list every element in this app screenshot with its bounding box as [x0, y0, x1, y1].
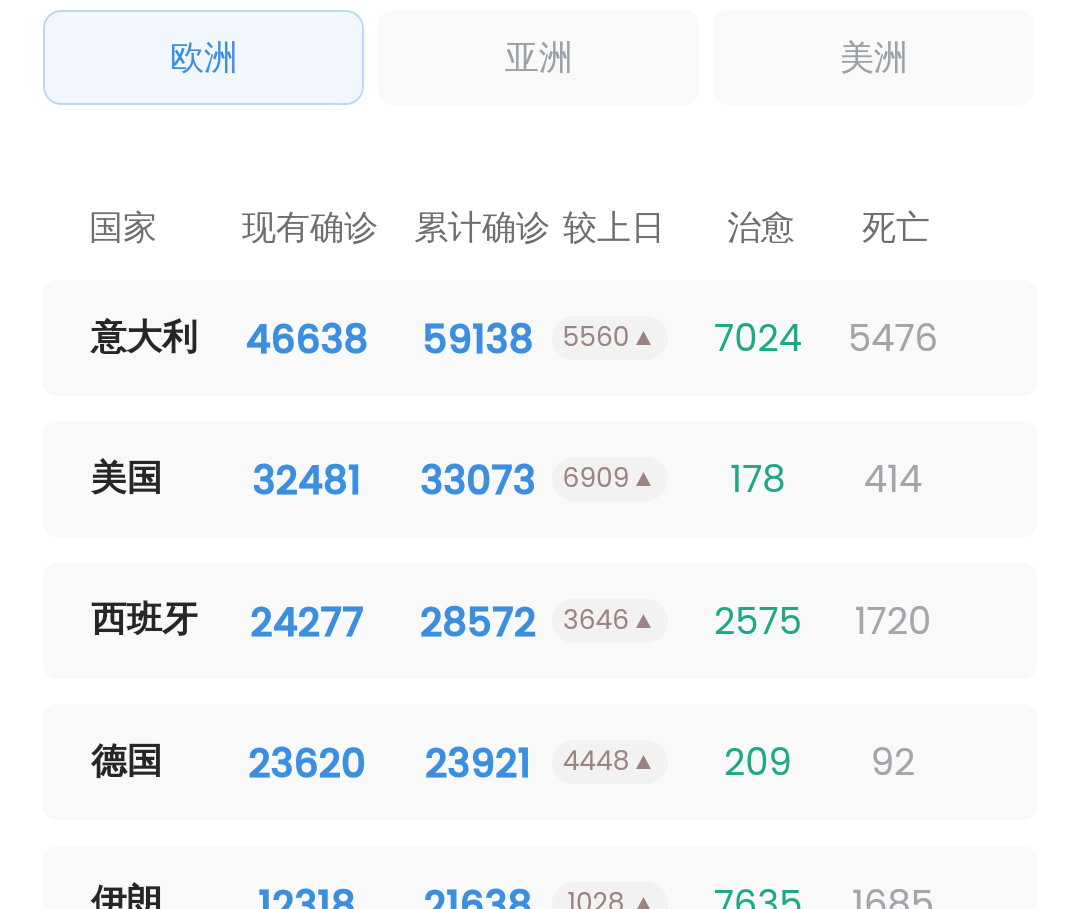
- staticText: 24277: [147, 595, 467, 649]
- other: increase: [636, 755, 651, 769]
- staticText: 5560: [551, 318, 641, 355]
- staticText: 较上日: [454, 206, 774, 249]
- staticText: 414: [733, 453, 1053, 505]
- staticText: 1685: [733, 878, 1053, 909]
- staticText: 亚洲: [505, 36, 573, 79]
- staticText: 46638: [147, 312, 467, 366]
- other: increase: [636, 472, 651, 486]
- staticText: 累计确诊: [322, 206, 642, 249]
- staticText: 国家: [89, 206, 157, 249]
- other: increase: [636, 614, 651, 628]
- other: increase: [636, 897, 651, 909]
- staticText: 3646: [551, 601, 641, 638]
- staticText: 1028: [551, 884, 641, 909]
- staticText: 2575: [598, 595, 918, 647]
- staticText: 6909: [551, 459, 641, 496]
- staticText: 欧洲: [170, 36, 238, 79]
- staticText: 28572: [318, 595, 638, 649]
- staticText: 1720: [733, 595, 1053, 647]
- staticText: 23921: [318, 736, 638, 790]
- staticText: 美洲: [840, 36, 908, 79]
- staticText: 伊朗: [91, 880, 162, 909]
- staticText: 33073: [318, 453, 638, 507]
- button[interactable]: [43, 846, 1037, 909]
- staticText: 21638: [318, 878, 638, 909]
- staticText: 意大利: [91, 315, 198, 360]
- staticText: 12318: [147, 878, 467, 909]
- staticText: 92: [733, 736, 1053, 788]
- staticText: 德国: [91, 739, 162, 784]
- other: increase: [636, 331, 651, 345]
- staticText: 7635: [598, 878, 918, 909]
- button[interactable]: 亚洲: [378, 10, 699, 105]
- staticText: 32481: [147, 453, 467, 507]
- staticText: 美国: [91, 456, 162, 501]
- staticText: 209: [598, 736, 918, 788]
- staticText: 现有确诊: [150, 206, 470, 249]
- button[interactable]: 欧洲: [43, 10, 364, 105]
- staticText: 7024: [598, 312, 918, 364]
- button[interactable]: [43, 421, 1037, 537]
- staticText: 59138: [318, 312, 638, 366]
- button[interactable]: [43, 563, 1037, 679]
- staticText: 西班牙: [91, 597, 198, 642]
- staticText: 5476: [733, 312, 1053, 364]
- staticText: 治愈: [601, 206, 921, 249]
- staticText: 4448: [551, 742, 641, 779]
- staticText: 23620: [147, 736, 467, 790]
- button[interactable]: 美洲: [713, 10, 1034, 105]
- staticText: 178: [598, 453, 918, 505]
- staticText: 死亡: [736, 206, 1056, 249]
- button[interactable]: [43, 280, 1037, 396]
- button[interactable]: [43, 704, 1037, 820]
